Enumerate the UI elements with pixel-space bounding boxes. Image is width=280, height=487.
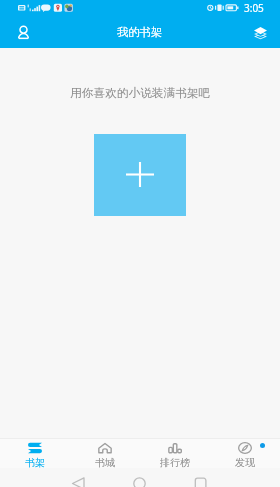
button[interactable]: 发现 (210, 439, 280, 468)
staticText: 3:05 (244, 1, 264, 15)
button[interactable]: Add book (94, 134, 186, 216)
staticText: 用你喜欢的小说装满书架吧 (70, 86, 211, 101)
button[interactable]: Account (8, 17, 38, 47)
staticText: 排行榜 (160, 456, 190, 468)
staticText: 书城 (95, 456, 115, 468)
staticText: 书架 (25, 456, 45, 468)
button[interactable]: 排行榜 (140, 439, 210, 468)
button[interactable]: 书城 (70, 439, 140, 468)
button[interactable]: Layers (247, 19, 273, 45)
button[interactable]: 书架 (0, 439, 70, 468)
staticText: 我的书架 (117, 25, 163, 39)
staticText: 发现 (235, 456, 255, 468)
